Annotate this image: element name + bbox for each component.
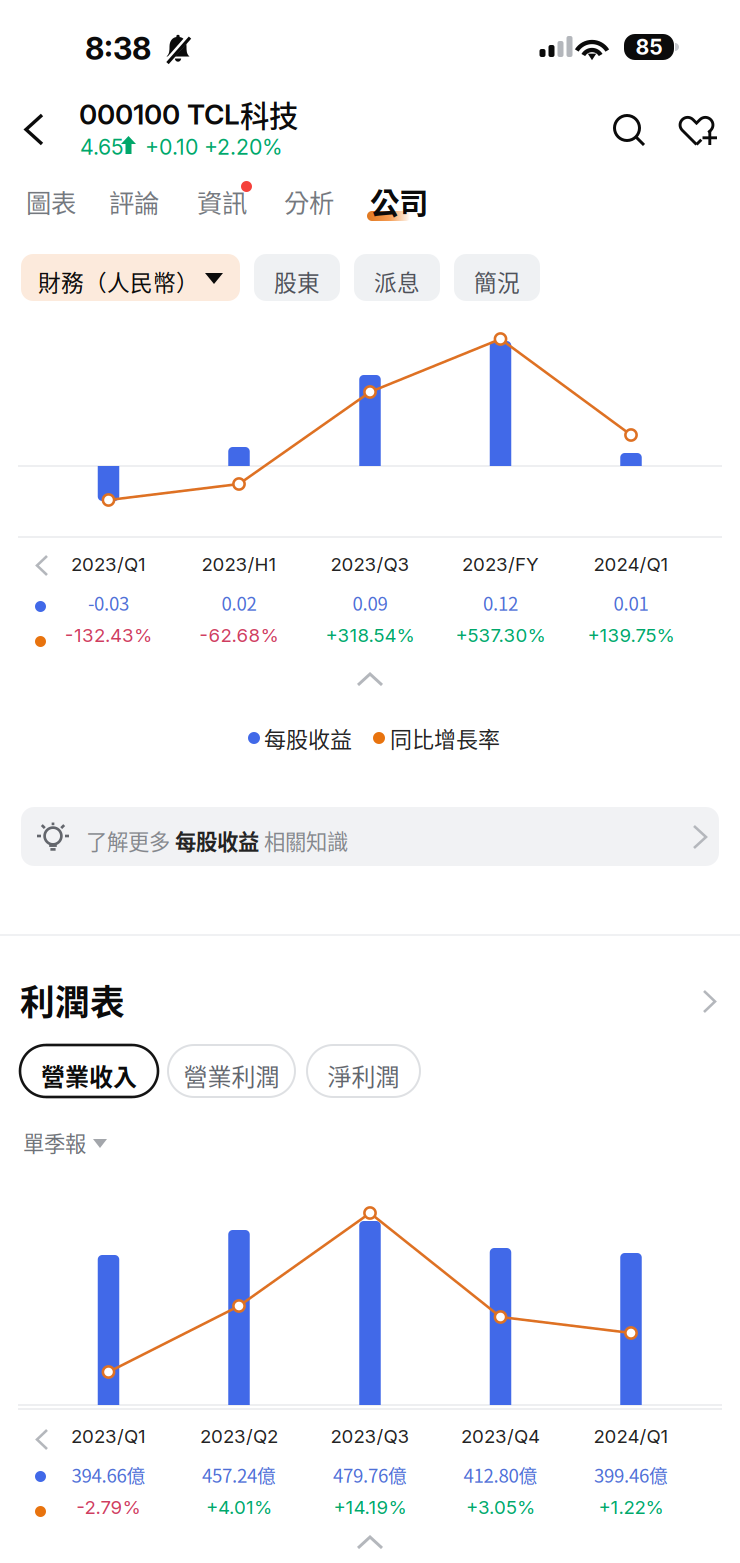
button[interactable]: 營業利潤 <box>168 1045 295 1097</box>
staticText: 85 <box>635 34 662 60</box>
staticText: 淨利潤 <box>327 1058 399 1093</box>
staticText: 相關知識 <box>259 825 348 856</box>
staticText: +139.75% <box>587 624 674 647</box>
button[interactable]: 資訊 <box>197 183 257 233</box>
button[interactable]: Collapse <box>345 1527 395 1559</box>
button[interactable]: 簡況 <box>454 254 540 301</box>
staticText: 圖表 <box>26 183 76 220</box>
staticText: 2024/Q1 <box>593 1425 668 1448</box>
staticText: -0.03 <box>88 589 129 616</box>
staticText: 評論 <box>109 183 159 220</box>
button[interactable]: 派息 <box>354 254 440 301</box>
staticText: +3.05% <box>466 1496 535 1519</box>
staticText: 單季報 <box>23 1127 86 1158</box>
staticText: 457.24億 <box>202 1461 276 1488</box>
staticText: -62.68% <box>199 624 278 647</box>
staticText: 0.12 <box>483 589 518 616</box>
staticText: 每股收益 <box>264 722 352 754</box>
staticText: 2023/Q4 <box>461 1425 540 1448</box>
button[interactable]: 圖表 <box>26 183 86 233</box>
staticText: 412.80億 <box>463 1461 537 1488</box>
staticText: 394.66億 <box>71 1461 145 1488</box>
button[interactable]: Back <box>12 98 68 160</box>
staticText: +14.19% <box>333 1496 406 1519</box>
staticText: 了解更多 <box>86 825 175 856</box>
staticText: 公司 <box>370 180 428 222</box>
staticText: 營業收入 <box>41 1058 137 1093</box>
staticText: 股東 <box>274 265 320 298</box>
staticText: 每股收益 <box>175 825 259 856</box>
button[interactable]: 單季報 <box>22 1126 132 1160</box>
staticText: 營業利潤 <box>183 1058 279 1093</box>
staticText: +2.20% <box>204 134 283 160</box>
staticText: 2024/Q1 <box>593 553 668 576</box>
staticText: 簡況 <box>474 265 520 298</box>
button[interactable]: Add to watchlist <box>670 104 728 158</box>
button[interactable]: 評論 <box>109 183 169 233</box>
staticText: 派息 <box>374 265 420 298</box>
staticText: +0.10 <box>145 134 198 160</box>
staticText: 科技 <box>240 93 298 135</box>
button[interactable]: 利潤表 <box>0 978 740 1030</box>
staticText: -2.79% <box>76 1496 140 1519</box>
staticText: 8:38 <box>85 30 151 67</box>
staticText: 資訊 <box>197 183 247 220</box>
staticText: +318.54% <box>325 624 414 647</box>
staticText: 0.01 <box>613 589 648 616</box>
staticText: 000100 TCL <box>79 97 240 131</box>
staticText: 2023/Q2 <box>200 1425 278 1448</box>
staticText: 0.02 <box>221 589 256 616</box>
staticText: 0.09 <box>352 589 387 616</box>
staticText: +1.22% <box>598 1496 663 1519</box>
button[interactable]: 公司 <box>370 183 430 233</box>
button[interactable]: 了解更多 <box>21 807 719 866</box>
staticText: 2023/Q3 <box>330 1425 409 1448</box>
staticText: 4.65 <box>80 134 124 160</box>
staticText: +4.01% <box>206 1496 272 1519</box>
staticText: 2023/Q3 <box>330 553 409 576</box>
staticText: 分析 <box>284 183 334 220</box>
button[interactable]: 淨利潤 <box>307 1045 420 1097</box>
button[interactable]: Collapse <box>345 662 395 698</box>
staticText: 2023/Q1 <box>71 553 146 576</box>
staticText: +537.30% <box>455 624 545 647</box>
button[interactable]: 分析 <box>284 183 344 233</box>
button[interactable]: 營業收入 <box>20 1045 158 1097</box>
button[interactable]: 財務（人民幣） <box>21 254 240 301</box>
staticText: 利潤表 <box>20 975 125 1025</box>
staticText: 399.46億 <box>594 1461 668 1488</box>
staticText: 2023/H1 <box>201 553 276 576</box>
staticText: -132.43% <box>65 624 152 647</box>
button[interactable]: Search <box>600 104 658 158</box>
staticText: 2023/Q1 <box>71 1425 146 1448</box>
staticText: 479.76億 <box>333 1461 407 1488</box>
staticText: 2023/FY <box>462 553 539 576</box>
staticText: 同比增長率 <box>390 722 500 754</box>
staticText: 財務（人民幣） <box>38 265 199 298</box>
button[interactable]: 股東 <box>254 254 340 301</box>
